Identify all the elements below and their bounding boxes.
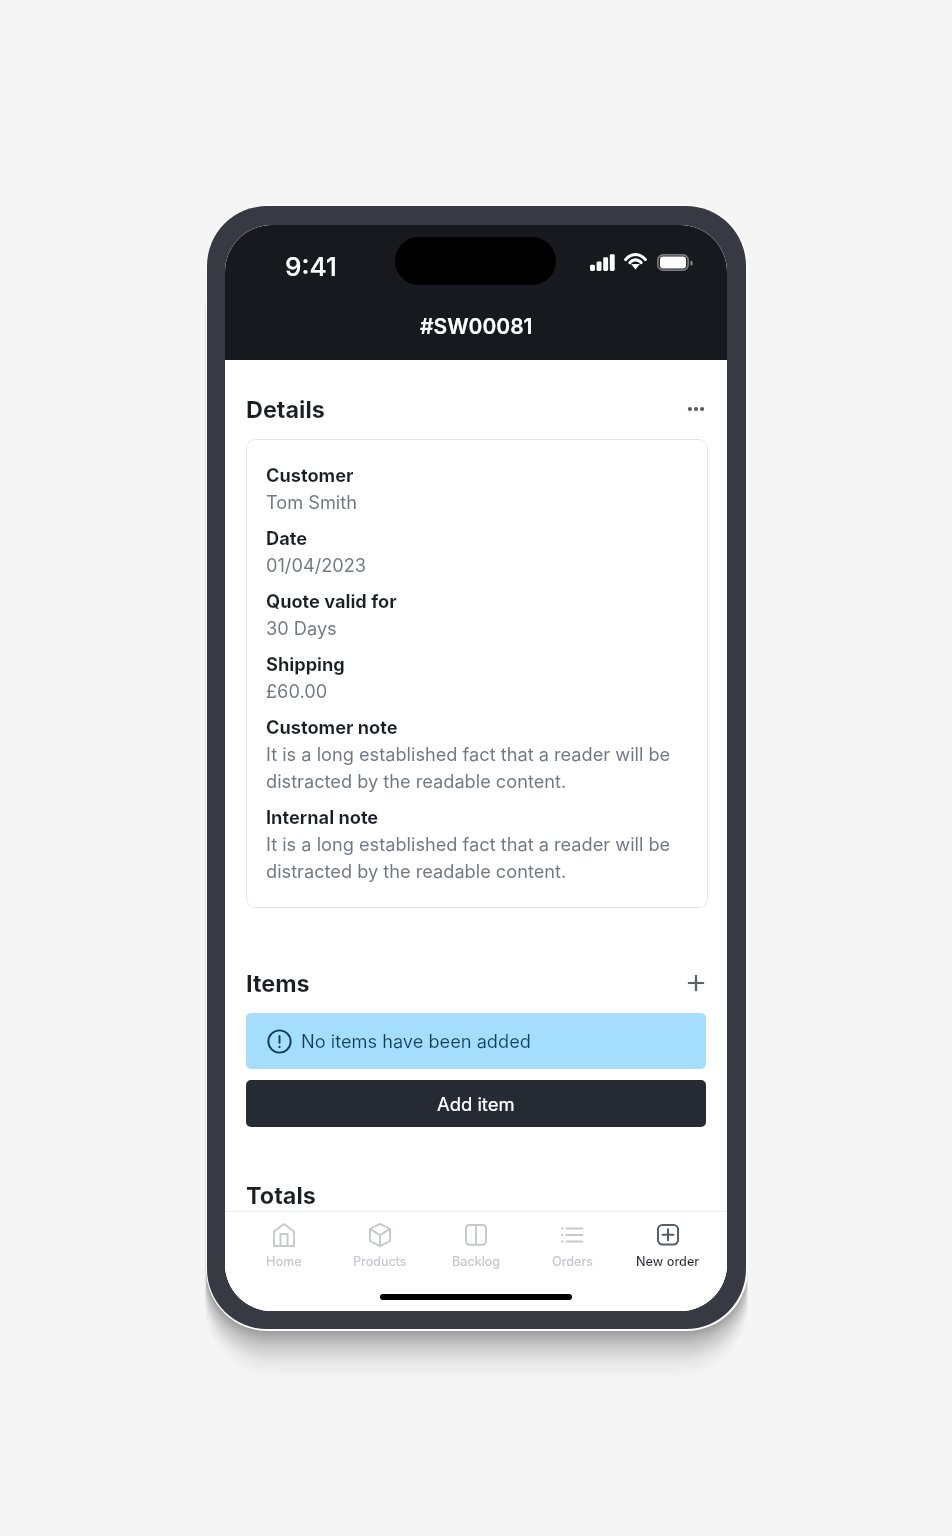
staticText: It is a long established fact that a rea… [266,829,678,883]
button[interactable]: New order [620,1211,716,1281]
staticText: Add item [437,1093,515,1115]
staticText: Orders [552,1254,593,1269]
staticText: Items [246,969,310,997]
staticText: Customer note [266,712,398,739]
button[interactable]: Add item [246,1080,706,1127]
button[interactable]: Home [236,1211,332,1281]
button[interactable]: Backlog [428,1211,524,1281]
staticText: Tom Smith [266,487,357,514]
staticText: Home [266,1254,302,1269]
staticText: Quote valid for [266,586,397,613]
staticText: Internal note [266,802,379,829]
button[interactable]: No items have been added [246,1013,706,1069]
staticText: 01/04/2023 [266,550,367,577]
staticText: Details [246,395,325,423]
staticText: Shipping [266,649,345,676]
button[interactable]: Customer [246,439,708,908]
button[interactable]: More options [675,388,717,430]
staticText: Date [266,523,308,550]
button[interactable]: Details [246,391,686,427]
button[interactable]: Orders [524,1211,620,1281]
staticText: Customer [266,460,354,487]
staticText: It is a long established fact that a rea… [266,739,678,793]
button[interactable]: Items [246,965,686,1001]
button[interactable]: Products [332,1211,428,1281]
staticText: Products [353,1254,407,1269]
staticText: #SW00081 [420,314,533,339]
button[interactable]: Add item [675,962,717,1004]
staticText: New order [636,1254,700,1269]
staticText: Totals [246,1181,316,1209]
staticText: £60.00 [266,676,328,703]
staticText: No items have been added [301,1030,531,1052]
staticText: 9:41 [285,251,337,283]
staticText: 30 Days [266,613,337,640]
staticText: Backlog [452,1254,501,1269]
